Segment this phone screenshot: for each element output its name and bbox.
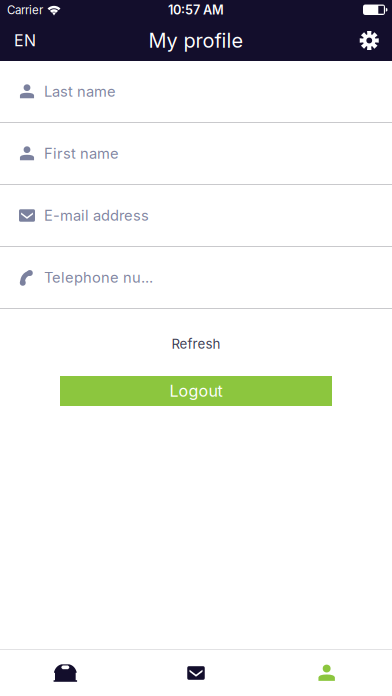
staticText: Telephone nu... xyxy=(44,269,153,286)
button[interactable]: Refresh xyxy=(157,331,234,357)
button[interactable]: E-mail address xyxy=(0,185,392,246)
button[interactable]: Settings xyxy=(345,20,392,61)
staticText: My profile xyxy=(148,28,243,53)
button[interactable]: Messages xyxy=(131,650,261,696)
button[interactable]: Profile xyxy=(261,650,392,696)
staticText: Last name xyxy=(44,83,116,100)
staticText: EN xyxy=(14,31,36,50)
staticText: First name xyxy=(44,145,119,162)
staticText: E-mail address xyxy=(44,207,149,224)
staticText: Carrier xyxy=(7,3,43,17)
button[interactable]: First name xyxy=(0,123,392,184)
button[interactable]: Telephone nu... xyxy=(0,247,392,308)
button[interactable]: Logout xyxy=(60,376,332,406)
staticText: 10:57 AM xyxy=(168,2,224,18)
staticText: Logout xyxy=(169,381,222,401)
button[interactable]: Shop xyxy=(0,650,131,696)
staticText: Refresh xyxy=(171,336,220,352)
button[interactable]: EN xyxy=(0,20,50,61)
button[interactable]: Last name xyxy=(0,61,392,122)
